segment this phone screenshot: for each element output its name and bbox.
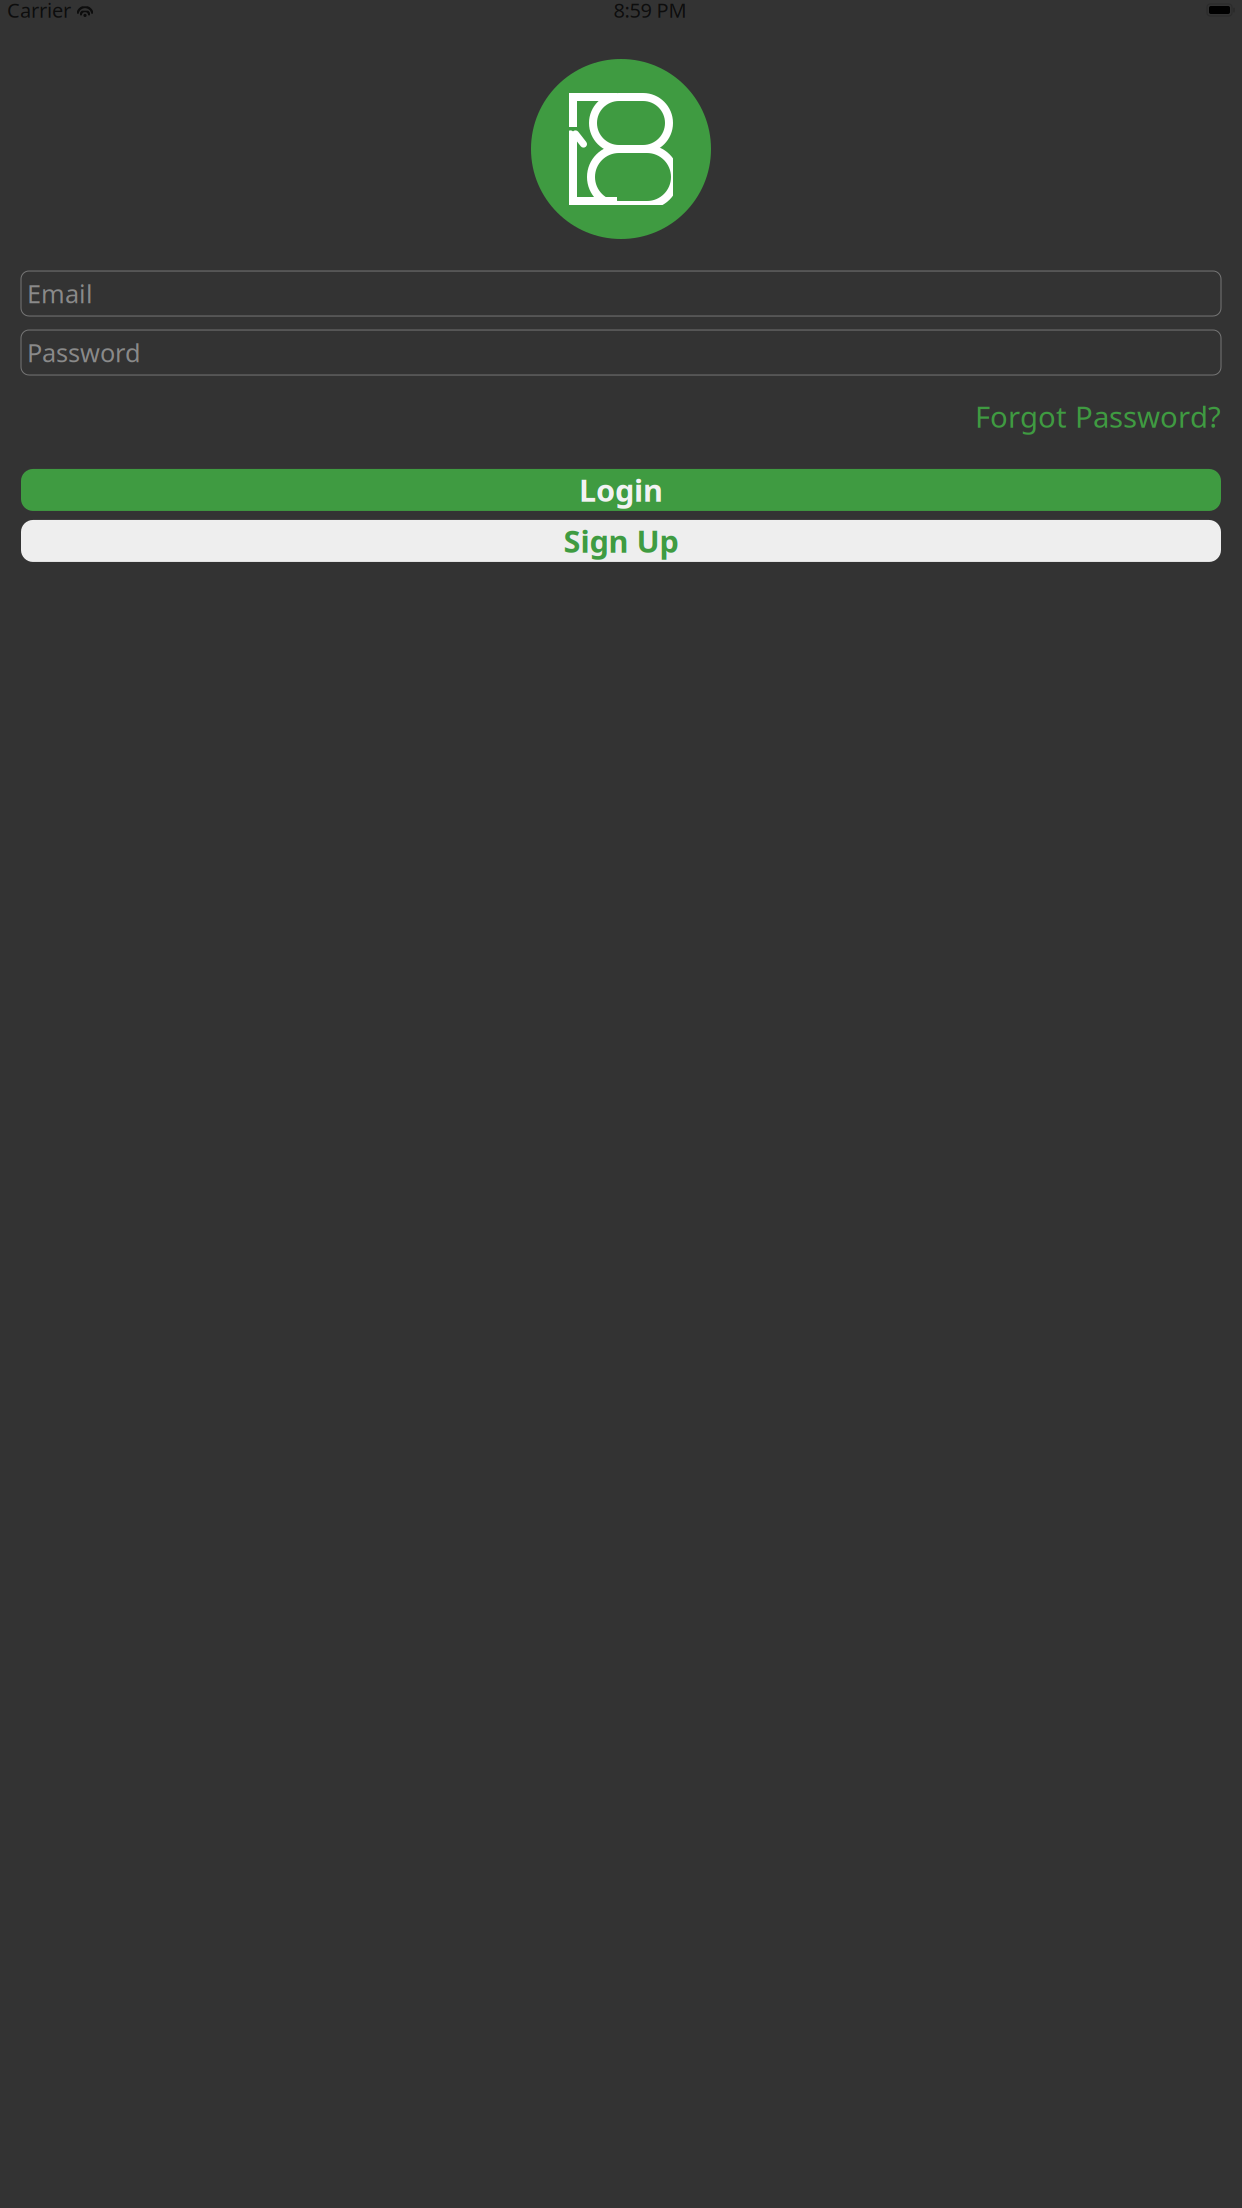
button[interactable]: Login: [21, 469, 1221, 511]
staticText: Login: [579, 470, 663, 510]
staticText: Carrier: [7, 0, 71, 23]
button[interactable]: Forgot Password?: [975, 397, 1221, 436]
staticText: Password: [27, 336, 141, 369]
staticText: 8:59 PM: [613, 0, 686, 23]
button[interactable]: Password: [21, 330, 1221, 375]
staticText: Sign Up: [563, 521, 678, 561]
button[interactable]: Email: [21, 271, 1221, 316]
staticText: Forgot Password?: [975, 397, 1221, 436]
button[interactable]: Sign Up: [21, 520, 1221, 562]
staticText: Email: [27, 277, 93, 310]
